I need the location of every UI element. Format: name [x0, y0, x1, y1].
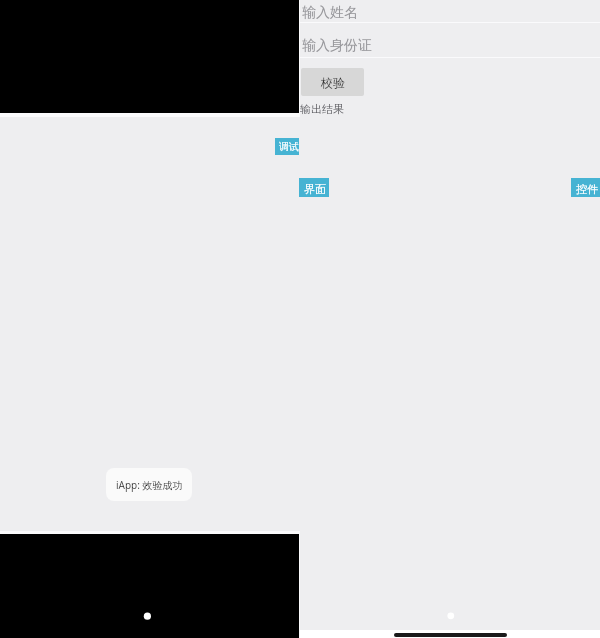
button[interactable]: 调试: [275, 138, 299, 155]
button[interactable]: Home: [394, 633, 507, 637]
staticText: 控件: [576, 182, 598, 196]
staticText: 校验: [321, 75, 345, 90]
staticText: 输入身份证: [302, 37, 372, 55]
button[interactable]: 输入姓名: [300, 0, 600, 22]
staticText: 调试: [279, 140, 299, 153]
staticText: 输入姓名: [302, 4, 358, 22]
staticText: iApp: 效验成功: [116, 478, 183, 492]
button[interactable]: 控件: [571, 178, 600, 197]
button[interactable]: 校验: [301, 68, 364, 96]
button[interactable]: 输入身份证: [300, 23, 600, 57]
button[interactable]: 界面: [299, 178, 329, 197]
staticText: 界面: [304, 182, 326, 196]
staticText: 输出结果: [300, 102, 344, 116]
